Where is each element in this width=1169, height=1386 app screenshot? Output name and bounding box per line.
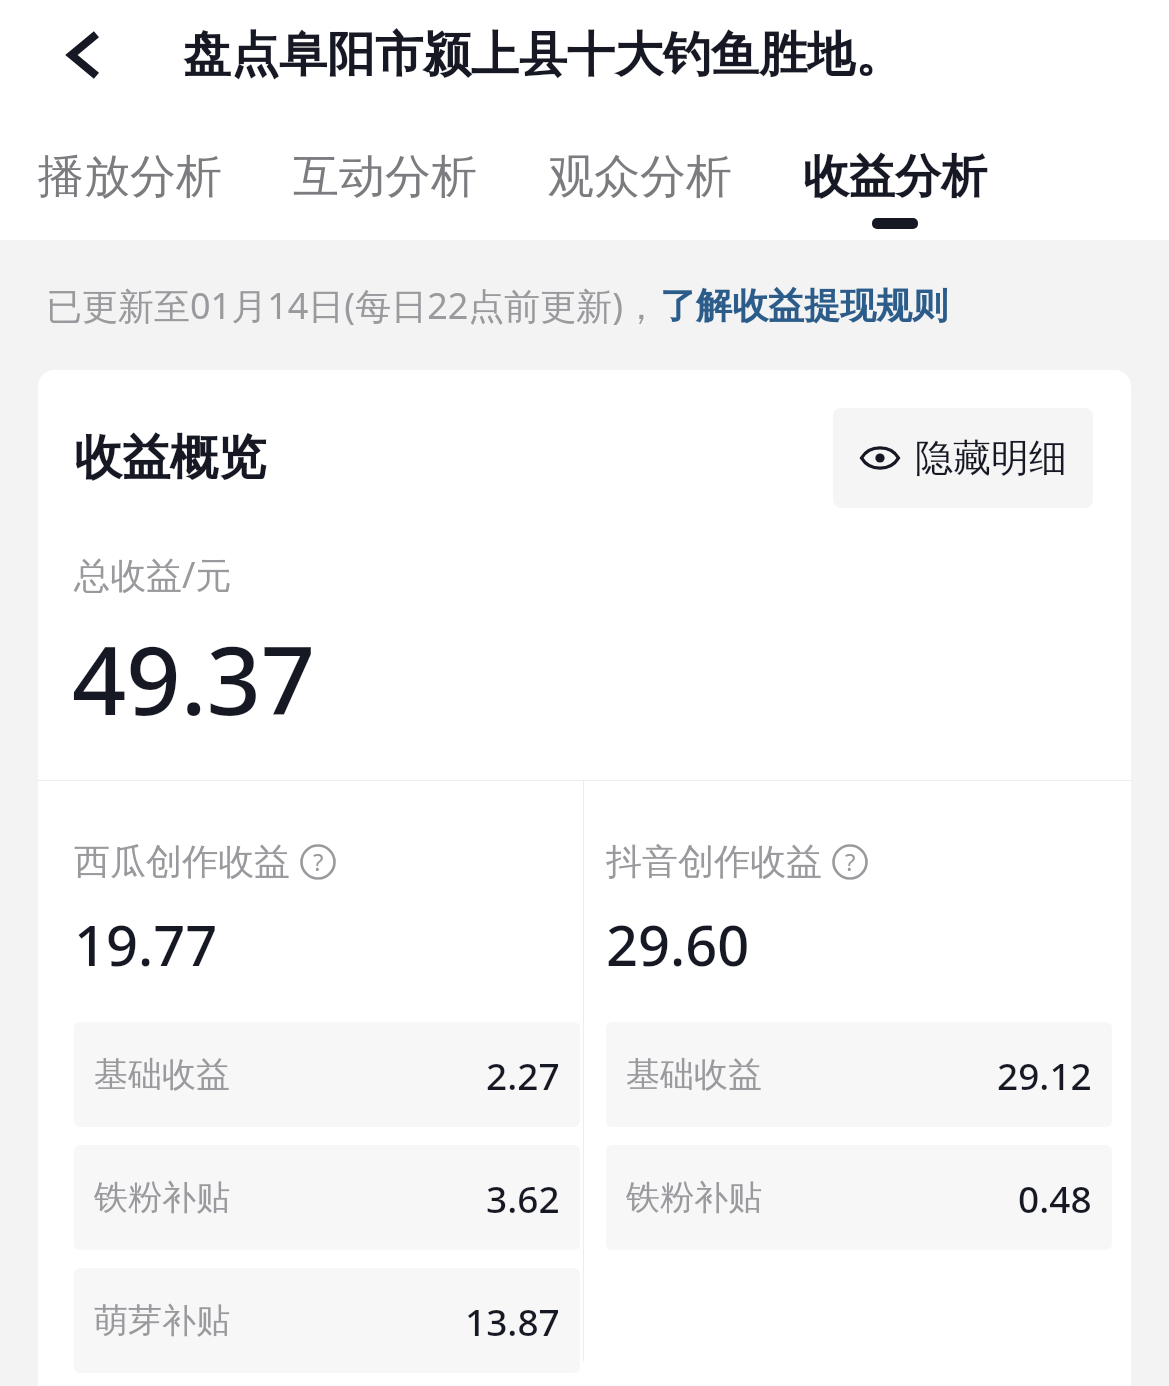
staticText: 播放分析 xyxy=(38,148,222,206)
button[interactable]: Back xyxy=(42,12,128,98)
staticText: 了解收益提现规则 xyxy=(660,283,948,328)
button[interactable]: 铁粉补贴 xyxy=(74,1145,580,1250)
staticText: 互动分析 xyxy=(293,148,477,206)
button[interactable]: 基础收益 xyxy=(74,1022,580,1127)
staticText: 隐藏明细 xyxy=(915,434,1067,482)
staticText: 萌芽补贴 xyxy=(94,1299,230,1342)
staticText: ? xyxy=(313,845,324,878)
staticText: 已更新至01月14日(每日22点前更新)， xyxy=(46,281,660,330)
button[interactable]: 播放分析 xyxy=(38,148,222,218)
staticText: 19.77 xyxy=(74,906,218,982)
staticText: 收益分析 xyxy=(803,148,987,206)
button[interactable]: 收益分析 xyxy=(803,148,987,229)
button[interactable]: 隐藏明细 xyxy=(833,408,1093,508)
staticText: 49.37 xyxy=(72,613,316,742)
button[interactable]: 萌芽补贴 xyxy=(74,1268,580,1373)
button[interactable]: 基础收益 xyxy=(606,1022,1112,1127)
staticText: 29.12 xyxy=(997,1050,1092,1100)
staticText: 29.60 xyxy=(606,906,750,982)
staticText: 抖音创作收益 xyxy=(606,839,822,884)
staticText: 收益概览 xyxy=(74,428,266,488)
button[interactable]: 了解收益提现规则 xyxy=(660,283,948,328)
staticText: 西瓜创作收益 xyxy=(74,839,290,884)
staticText: 0.48 xyxy=(1018,1173,1092,1223)
staticText: 铁粉补贴 xyxy=(626,1176,762,1219)
button[interactable]: 铁粉补贴 xyxy=(606,1145,1112,1250)
staticText: 总收益/元 xyxy=(74,550,232,599)
staticText: 基础收益 xyxy=(94,1053,230,1096)
staticText: 盘点阜阳市颍上县十大钓鱼胜地。 xyxy=(183,25,903,85)
staticText: 铁粉补贴 xyxy=(94,1176,230,1219)
staticText: ? xyxy=(845,845,856,878)
staticText: 3.62 xyxy=(486,1173,560,1223)
staticText: 2.27 xyxy=(486,1050,560,1100)
staticText: 观众分析 xyxy=(548,148,732,206)
staticText: 13.87 xyxy=(465,1296,560,1346)
button[interactable]: 互动分析 xyxy=(293,148,477,218)
button[interactable]: 观众分析 xyxy=(548,148,732,218)
staticText: 基础收益 xyxy=(626,1053,762,1096)
